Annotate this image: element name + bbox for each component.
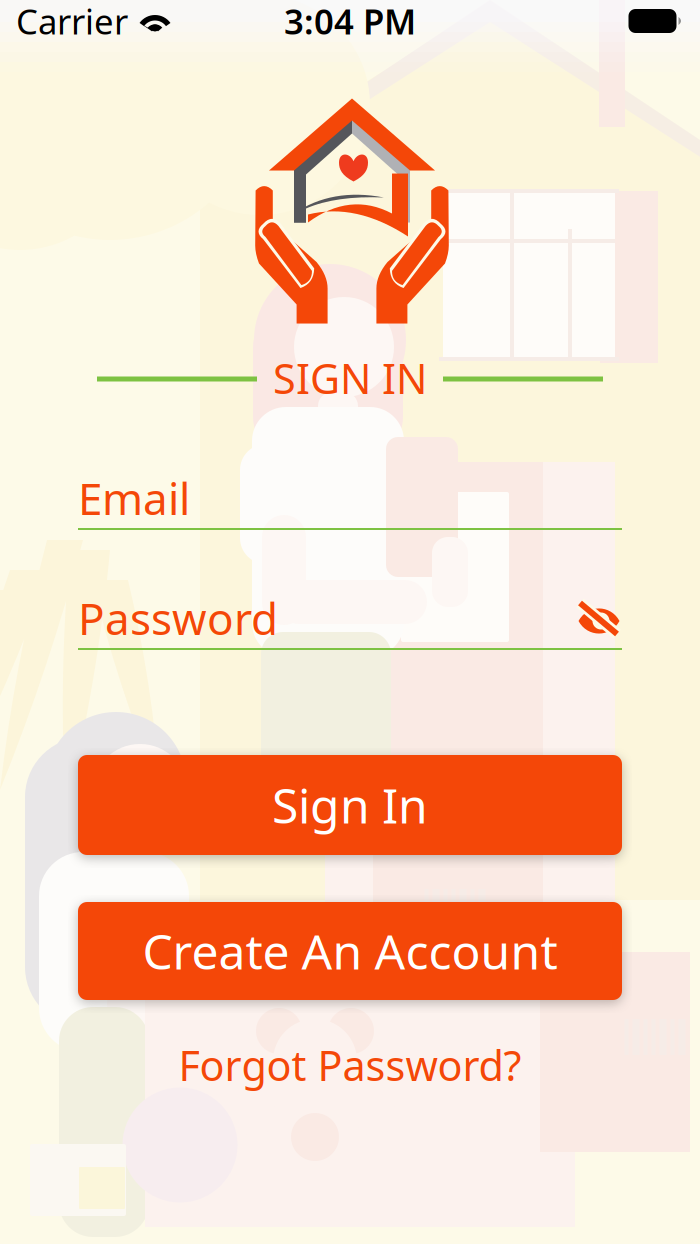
button[interactable]: Sign In xyxy=(78,755,622,855)
button[interactable]: Forgot Password? xyxy=(158,1026,541,1104)
staticText: SIGN IN xyxy=(273,351,427,405)
staticText: Sign In xyxy=(272,773,428,837)
staticText: 3:04 PM xyxy=(284,0,416,44)
staticText: Forgot Password? xyxy=(178,1038,521,1092)
staticText: Password xyxy=(78,589,278,647)
button[interactable]: Create An Account xyxy=(78,902,622,1000)
button[interactable]: Show password xyxy=(564,591,622,645)
staticText: Create An Account xyxy=(142,919,557,983)
staticText: Email xyxy=(78,469,190,527)
staticText: Carrier xyxy=(16,0,128,44)
